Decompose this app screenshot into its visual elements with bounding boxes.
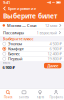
staticText: Первый [8, 56, 22, 61]
button[interactable]: Комфорт [0, 46, 64, 51]
button[interactable]: Первый [0, 56, 64, 61]
staticText: Поиск [4, 95, 12, 99]
staticText: 6 900 ₽ [3, 65, 15, 70]
staticText: 6 900 ₽ [49, 46, 61, 51]
staticText: 12 мая [45, 23, 57, 28]
staticText: Эконом [8, 41, 22, 46]
staticText: Карта [36, 95, 43, 99]
staticText: Выберите класс [3, 36, 34, 41]
button[interactable]: Билеты [16, 89, 32, 99]
staticText: 1 взрослый [37, 30, 57, 35]
staticText: Выберите билет [3, 11, 57, 20]
staticText: Москва — Сочи [7, 23, 36, 28]
staticText: 12 400 ₽ [47, 51, 61, 56]
staticText: 19 800 ₽ [47, 56, 61, 61]
staticText: 9:41 [3, 0, 10, 5]
staticText: Билеты [19, 95, 29, 99]
staticText: Пассажиры [3, 30, 24, 35]
staticText: Бизнес [8, 51, 20, 56]
button[interactable]: Пассажиры [0, 29, 64, 36]
staticText: Бронирование [8, 6, 36, 11]
button[interactable]: Поиск [0, 89, 16, 99]
button[interactable]: Москва — Сочи [0, 22, 64, 29]
button[interactable]: Эконом [0, 41, 64, 46]
button[interactable]: Назад [2, 5, 7, 11]
button[interactable]: Далее [44, 63, 61, 68]
staticText: Итого [3, 61, 11, 65]
staticText: Комфорт [8, 46, 24, 51]
button[interactable]: Профиль [48, 89, 64, 99]
staticText: Далее [47, 63, 58, 68]
button[interactable]: Карта [32, 89, 48, 99]
staticText: 4 500 ₽ [49, 41, 61, 46]
button[interactable]: Бизнес [0, 51, 64, 56]
staticText: Профиль [49, 95, 62, 99]
